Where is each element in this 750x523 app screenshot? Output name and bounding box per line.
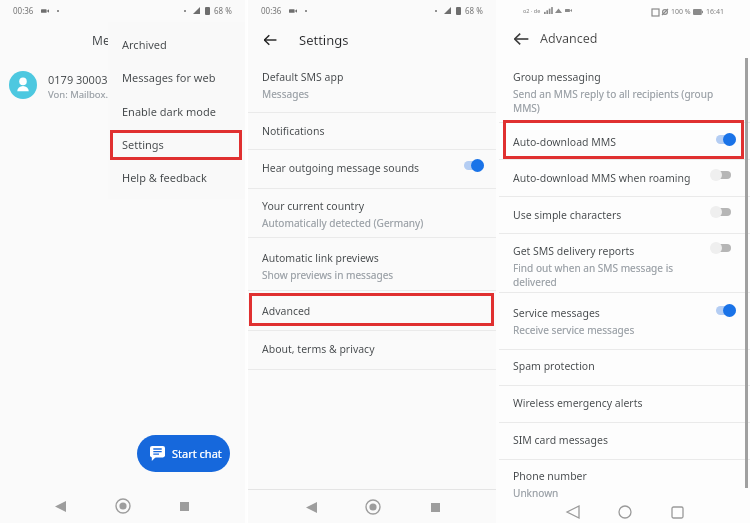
button[interactable]: Service messages: [499, 298, 750, 329]
button[interactable]: Auto-download MMS when roaming: [499, 163, 750, 177]
staticText: Get SMS delivery reports: [513, 244, 635, 258]
button[interactable]: Help & feedback: [108, 161, 246, 194]
button[interactable]: Your current country: [248, 191, 497, 222]
button[interactable]: Group messaging: [499, 62, 750, 107]
staticText: Receive service messages: [513, 323, 635, 337]
staticText: Find out when an SMS message is delivere…: [513, 261, 674, 289]
staticText: Your current country: [262, 199, 365, 213]
button[interactable]: Hear outgoing message sounds: [248, 153, 497, 167]
button[interactable]: Home: [360, 494, 386, 520]
button[interactable]: Wireless emergency alerts: [499, 388, 750, 402]
button[interactable]: Spam protection: [499, 351, 750, 365]
staticText: 16:41: [706, 7, 724, 17]
staticText: Archived: [122, 37, 167, 52]
button[interactable]: Recents: [422, 494, 448, 520]
staticText: Start chat: [172, 446, 222, 461]
staticText: Messages: [92, 32, 148, 48]
staticText: Advanced: [540, 30, 598, 47]
button[interactable]: Messages for web: [108, 61, 246, 94]
button[interactable]: Home: [612, 499, 638, 523]
staticText: Notifications: [262, 124, 325, 138]
staticText: 100 %: [671, 7, 691, 17]
button[interactable]: Phone number: [499, 461, 750, 492]
staticText: Default SMS app: [262, 70, 344, 84]
button[interactable]: Advanced: [248, 296, 497, 310]
button[interactable]: Archived: [108, 28, 246, 61]
button[interactable]: 0179 300033: [0, 63, 246, 107]
button[interactable]: Automatic link previews: [248, 243, 497, 274]
staticText: 0179 300033: [48, 72, 114, 87]
staticText: 00:36: [13, 5, 34, 16]
staticText: Help & feedback: [122, 170, 207, 185]
button[interactable]: Use simple characters: [499, 200, 750, 214]
staticText: Automatic link previews: [262, 251, 379, 265]
staticText: Show previews in messages: [262, 268, 394, 282]
staticText: Use simple characters: [513, 208, 622, 222]
button[interactable]: Enable dark mode: [108, 95, 246, 128]
staticText: Advanced: [262, 304, 311, 318]
staticText: Phone number: [513, 469, 587, 483]
staticText: o2 · de: [523, 7, 541, 14]
button[interactable]: Settings: [108, 128, 246, 161]
staticText: Von: Mailbox.: [48, 88, 108, 101]
staticText: Send an MMS reply to all recipients (gro…: [513, 87, 714, 115]
button[interactable]: Back: [298, 494, 324, 520]
button[interactable]: Back: [560, 499, 586, 523]
button[interactable]: Back: [510, 28, 532, 50]
staticText: Settings: [299, 31, 349, 49]
staticText: Enable dark mode: [122, 104, 216, 119]
button[interactable]: Auto-download MMS: [499, 127, 750, 141]
button[interactable]: About, terms & privacy: [248, 334, 497, 348]
button[interactable]: Back: [259, 29, 281, 51]
staticText: Auto-download MMS when roaming: [513, 171, 691, 185]
staticText: 68 %: [214, 5, 232, 16]
button[interactable]: Home: [110, 493, 136, 519]
staticText: Hear outgoing message sounds: [262, 161, 420, 175]
staticText: Unknown: [513, 486, 559, 500]
staticText: About, terms & privacy: [262, 342, 375, 356]
button[interactable]: Default SMS app: [248, 62, 497, 93]
staticText: Messages: [262, 87, 309, 101]
staticText: SIM card messages: [513, 433, 608, 447]
staticText: Spam protection: [513, 359, 595, 373]
button[interactable]: Get SMS delivery reports: [499, 236, 750, 281]
staticText: Auto-download MMS: [513, 135, 617, 149]
button[interactable]: Start chat: [137, 435, 230, 472]
staticText: Group messaging: [513, 70, 601, 84]
staticText: Automatically detected (Germany): [262, 216, 424, 230]
staticText: Messages for web: [122, 70, 216, 85]
staticText: Service messages: [513, 306, 600, 320]
staticText: Wireless emergency alerts: [513, 396, 643, 410]
button[interactable]: Recents: [664, 499, 690, 523]
staticText: 00:36: [261, 5, 282, 16]
button[interactable]: Recents: [171, 493, 197, 519]
button[interactable]: Notifications: [248, 116, 497, 130]
staticText: 68 %: [465, 5, 483, 16]
button[interactable]: SIM card messages: [499, 425, 750, 439]
staticText: Settings: [122, 137, 164, 152]
button[interactable]: Back: [47, 493, 73, 519]
